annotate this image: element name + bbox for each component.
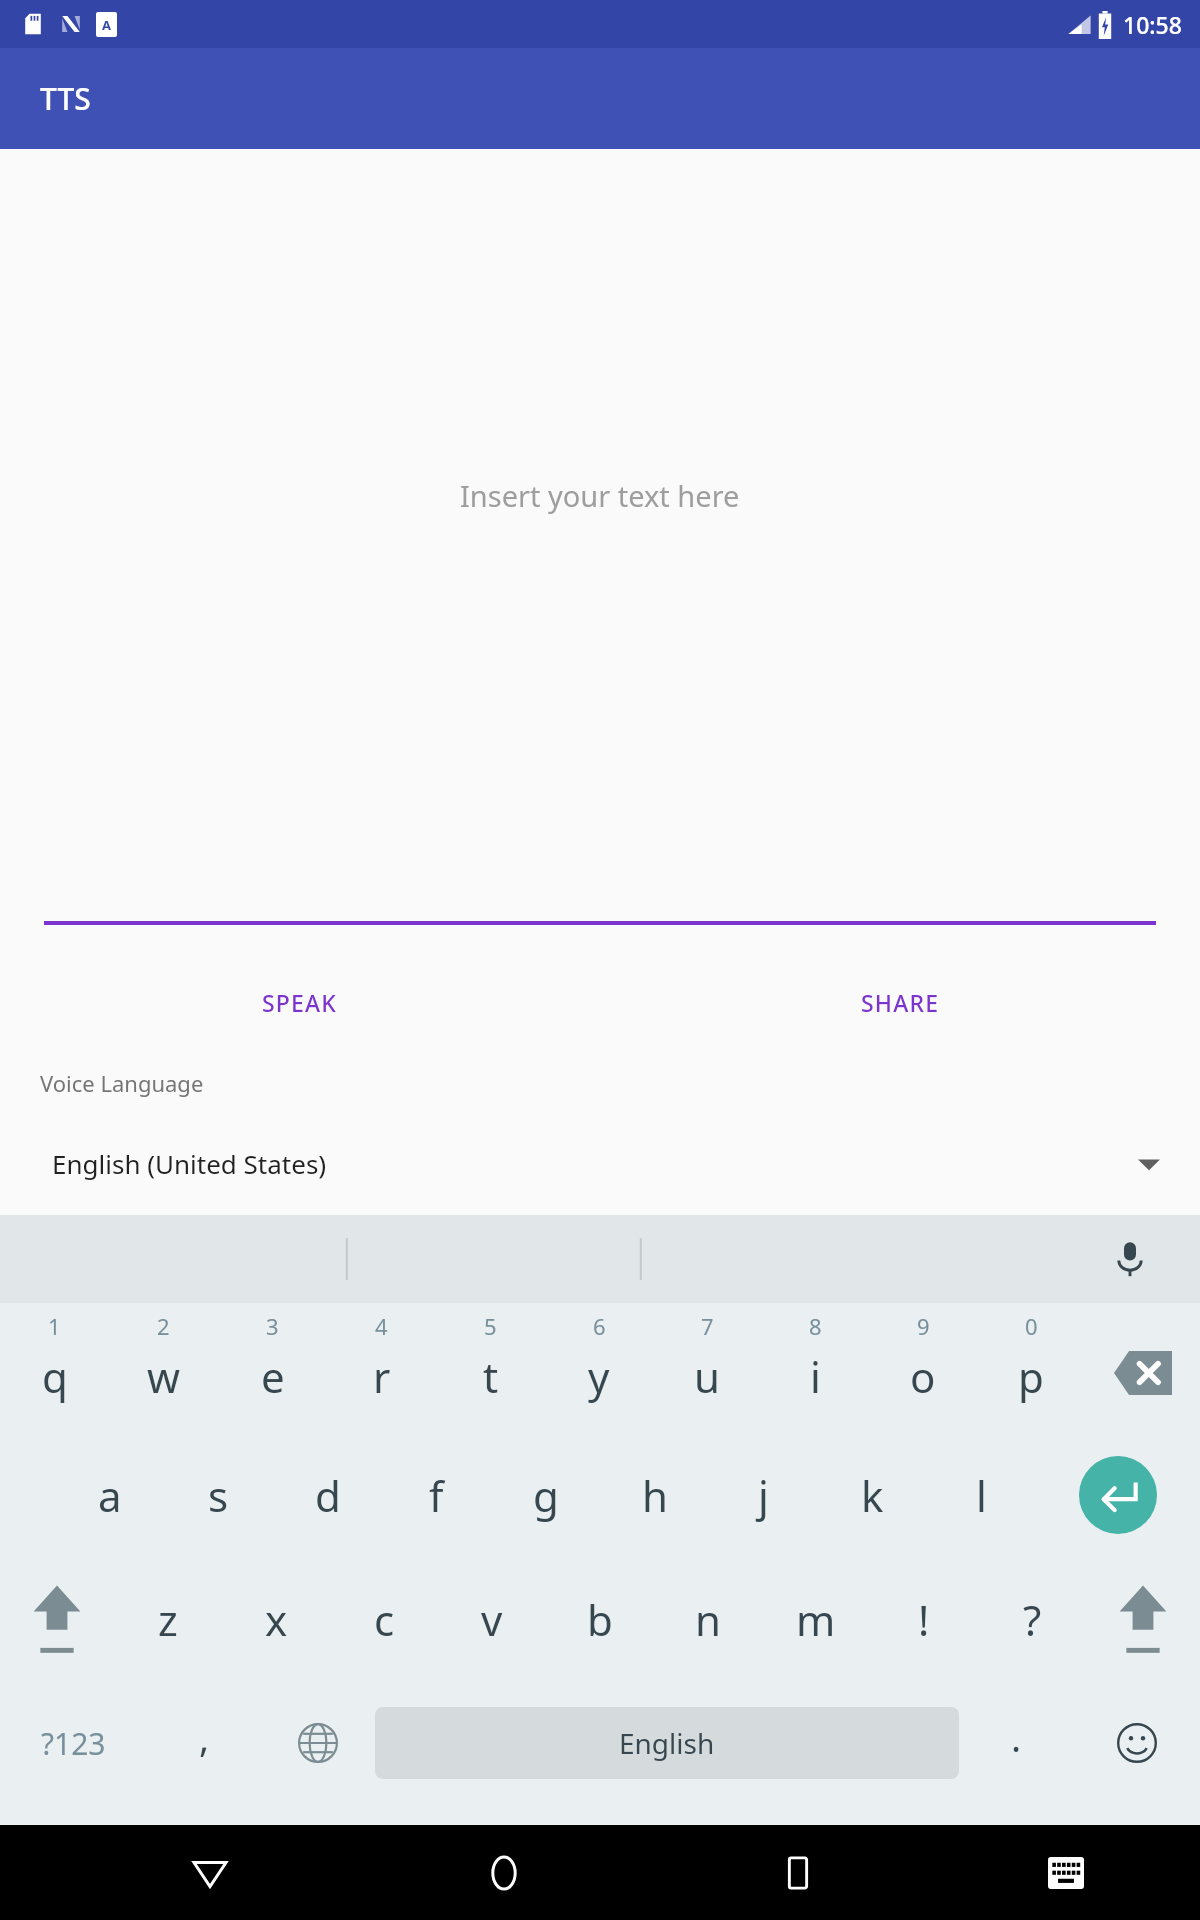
- button[interactable]: Hide keyboard: [983, 1825, 1149, 1920]
- staticText: b: [587, 1591, 613, 1648]
- button[interactable]: 3: [218, 1303, 327, 1433]
- button[interactable]: Voice input: [1104, 1233, 1156, 1285]
- button[interactable]: Back: [127, 1825, 293, 1920]
- button[interactable]: 7: [653, 1303, 761, 1433]
- button[interactable]: g: [491, 1433, 600, 1557]
- staticText: 4: [375, 1311, 388, 1341]
- staticText: ?123: [41, 1723, 106, 1764]
- button[interactable]: Change language: [261, 1681, 375, 1805]
- button[interactable]: d: [273, 1433, 382, 1557]
- button[interactable]: 5: [436, 1303, 545, 1433]
- staticText: 2: [157, 1311, 170, 1341]
- staticText: 0: [1025, 1311, 1038, 1341]
- button[interactable]: v: [438, 1557, 546, 1681]
- button[interactable]: c: [330, 1557, 438, 1681]
- staticText: English: [619, 1724, 715, 1762]
- button[interactable]: Shift: [1086, 1557, 1200, 1681]
- staticText: z: [158, 1591, 178, 1648]
- staticText: m: [796, 1591, 836, 1648]
- button[interactable]: 6: [545, 1303, 653, 1433]
- button[interactable]: f: [382, 1433, 491, 1557]
- staticText: q: [42, 1348, 68, 1405]
- button[interactable]: l: [927, 1433, 1036, 1557]
- button[interactable]: SHARE: [837, 977, 964, 1028]
- staticText: 6: [593, 1311, 606, 1341]
- button[interactable]: 0: [977, 1303, 1085, 1433]
- staticText: English (United States): [52, 1146, 327, 1181]
- staticText: l: [976, 1467, 987, 1524]
- staticText: TTS: [40, 78, 91, 119]
- staticText: k: [861, 1467, 884, 1524]
- staticText: d: [315, 1467, 341, 1524]
- staticText: t: [483, 1348, 499, 1405]
- button[interactable]: 9: [869, 1303, 977, 1433]
- staticText: Insert your text here: [460, 476, 740, 515]
- staticText: c: [374, 1591, 395, 1648]
- staticText: 10:58: [1123, 9, 1182, 40]
- staticText: x: [265, 1591, 288, 1648]
- staticText: r: [373, 1348, 391, 1405]
- staticText: ,: [199, 1711, 210, 1763]
- staticText: f: [429, 1467, 444, 1524]
- staticText: j: [758, 1467, 769, 1524]
- staticText: g: [533, 1467, 559, 1524]
- staticText: !: [918, 1591, 930, 1648]
- staticText: 8: [809, 1311, 822, 1341]
- button[interactable]: Home: [421, 1825, 587, 1920]
- button[interactable]: !: [870, 1557, 978, 1681]
- button[interactable]: s: [164, 1433, 273, 1557]
- button[interactable]: 4: [327, 1303, 436, 1433]
- staticText: n: [695, 1591, 721, 1648]
- staticText: v: [481, 1591, 503, 1648]
- button[interactable]: k: [818, 1433, 927, 1557]
- button[interactable]: a: [55, 1433, 164, 1557]
- button[interactable]: Shift: [0, 1557, 114, 1681]
- button[interactable]: m: [762, 1557, 870, 1681]
- staticText: y: [588, 1348, 610, 1405]
- staticText: p: [1018, 1348, 1044, 1405]
- staticText: o: [910, 1348, 936, 1405]
- button[interactable]: b: [546, 1557, 654, 1681]
- button[interactable]: English: [375, 1707, 959, 1779]
- staticText: ?: [1023, 1591, 1042, 1648]
- button[interactable]: SPEAK: [238, 977, 362, 1028]
- staticText: s: [208, 1467, 229, 1524]
- button[interactable]: ,: [147, 1681, 261, 1805]
- button[interactable]: j: [709, 1433, 818, 1557]
- button[interactable]: x: [222, 1557, 330, 1681]
- staticText: a: [98, 1467, 122, 1524]
- button[interactable]: h: [600, 1433, 709, 1557]
- staticText: 9: [917, 1311, 930, 1341]
- staticText: A: [102, 16, 111, 34]
- button[interactable]: Recents: [715, 1825, 881, 1920]
- button[interactable]: .: [959, 1681, 1073, 1805]
- button[interactable]: n: [654, 1557, 762, 1681]
- button[interactable]: 1: [0, 1303, 109, 1433]
- button[interactable]: 8: [761, 1303, 869, 1433]
- staticText: 1: [48, 1311, 61, 1341]
- button[interactable]: ?123: [0, 1681, 147, 1805]
- staticText: e: [261, 1348, 285, 1405]
- staticText: SHARE: [861, 987, 940, 1018]
- button[interactable]: English (United States): [0, 1098, 1200, 1181]
- staticText: SPEAK: [262, 987, 338, 1018]
- staticText: 5: [484, 1311, 497, 1341]
- button[interactable]: 2: [109, 1303, 218, 1433]
- button[interactable]: Emoji: [1073, 1681, 1200, 1805]
- staticText: Voice Language: [40, 1068, 204, 1098]
- staticText: u: [694, 1348, 720, 1405]
- staticText: i: [810, 1348, 821, 1405]
- button[interactable]: ?: [978, 1557, 1086, 1681]
- button[interactable]: Enter: [1036, 1433, 1200, 1557]
- staticText: 3: [266, 1311, 279, 1341]
- staticText: w: [147, 1348, 181, 1405]
- staticText: h: [642, 1467, 668, 1524]
- button[interactable]: z: [114, 1557, 222, 1681]
- staticText: .: [1011, 1711, 1022, 1763]
- button[interactable]: Backspace: [1085, 1303, 1200, 1433]
- staticText: 7: [701, 1311, 714, 1341]
